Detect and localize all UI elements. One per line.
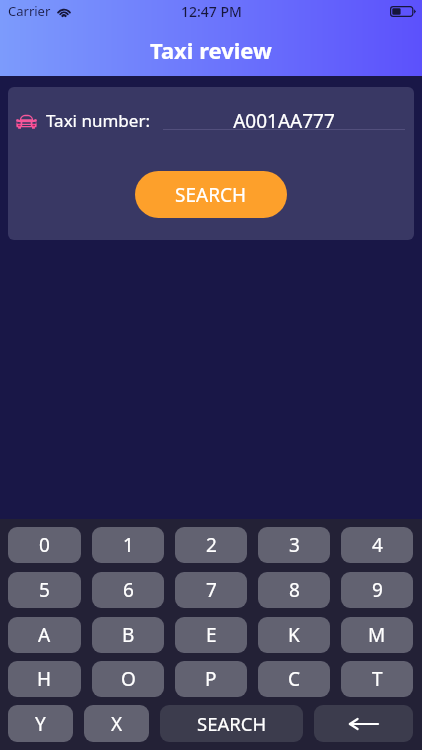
staticText: Carrier xyxy=(8,2,51,20)
staticText: B xyxy=(122,622,135,648)
button[interactable]: B xyxy=(92,617,164,653)
staticText: 5 xyxy=(39,577,50,603)
staticText: 4 xyxy=(372,532,383,558)
button[interactable]: K xyxy=(258,617,330,653)
button[interactable]: A xyxy=(8,617,81,653)
staticText: 9 xyxy=(372,577,383,603)
button[interactable]: M xyxy=(341,617,413,653)
staticText: Y xyxy=(35,711,46,737)
staticText: 2 xyxy=(206,532,217,558)
staticText: K xyxy=(288,622,300,648)
button[interactable]: 8 xyxy=(258,572,330,608)
staticText: A001AA777 xyxy=(163,108,405,134)
button[interactable]: 6 xyxy=(92,572,164,608)
button[interactable]: 1 xyxy=(92,527,164,563)
staticText: 3 xyxy=(289,532,300,558)
staticText: T xyxy=(372,666,383,692)
button[interactable]: 0 xyxy=(8,527,81,563)
button[interactable]: 7 xyxy=(175,572,247,608)
button[interactable]: P xyxy=(175,661,247,697)
button[interactable]: Y xyxy=(8,705,73,742)
button[interactable]: SEARCH xyxy=(160,705,303,742)
button[interactable]: 5 xyxy=(8,572,81,608)
button[interactable]: 2 xyxy=(175,527,247,563)
staticText: 0 xyxy=(39,532,50,558)
staticText: Taxi number: xyxy=(46,109,150,132)
staticText: O xyxy=(121,666,136,692)
button[interactable]: 4 xyxy=(341,527,413,563)
staticText: 6 xyxy=(123,577,134,603)
button[interactable]: T xyxy=(341,661,413,697)
staticText: 8 xyxy=(289,577,300,603)
button[interactable]: O xyxy=(92,661,164,697)
staticText: M xyxy=(368,622,386,648)
button[interactable]: Backspace xyxy=(314,705,413,742)
staticText: P xyxy=(205,666,217,692)
staticText: C xyxy=(288,666,301,692)
staticText: SEARCH xyxy=(197,711,267,736)
button[interactable]: C xyxy=(258,661,330,697)
staticText: 12:47 PM xyxy=(181,2,242,21)
button[interactable]: SEARCH xyxy=(135,171,287,218)
button[interactable]: 9 xyxy=(341,572,413,608)
other: Taxi xyxy=(16,114,37,129)
staticText: A xyxy=(38,622,51,648)
staticText: SEARCH xyxy=(175,182,247,208)
button[interactable]: X xyxy=(84,705,149,742)
staticText: H xyxy=(37,666,52,692)
staticText: E xyxy=(206,622,217,648)
button[interactable]: E xyxy=(175,617,247,653)
staticText: 1 xyxy=(123,532,134,558)
button[interactable]: 3 xyxy=(258,527,330,563)
staticText: Taxi review xyxy=(150,35,272,65)
button[interactable]: H xyxy=(8,661,81,697)
staticText: X xyxy=(111,711,123,737)
staticText: 7 xyxy=(206,577,217,603)
